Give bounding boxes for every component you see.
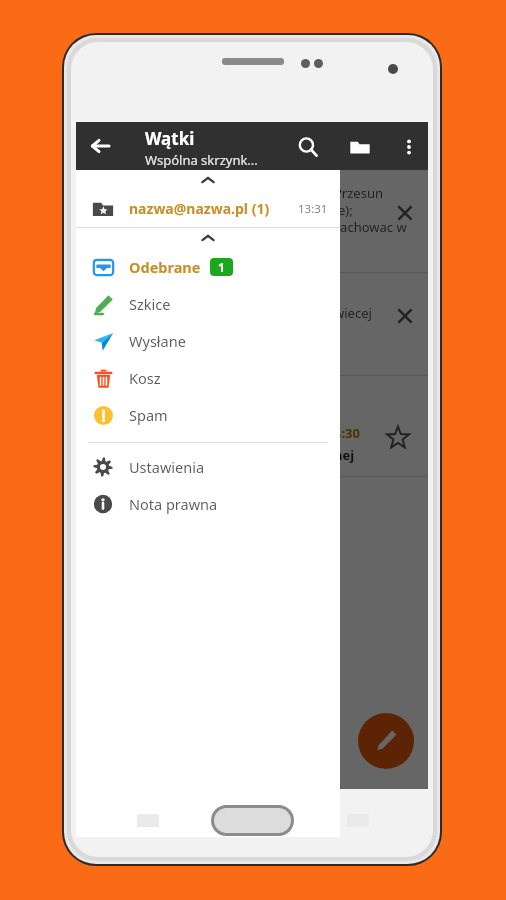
button[interactable]: Kosz bbox=[76, 359, 340, 396]
button[interactable]: Compose bbox=[358, 713, 414, 769]
button[interactable]: Szkice bbox=[76, 285, 340, 322]
staticText: Wątki bbox=[145, 127, 195, 150]
staticText: Nota prawna bbox=[129, 494, 218, 514]
button[interactable]: Folders bbox=[347, 134, 373, 160]
staticText: 4:30 bbox=[334, 424, 360, 442]
button[interactable]: Home bbox=[211, 805, 294, 836]
staticText: Wspólna skrzynk... bbox=[145, 151, 258, 169]
button[interactable]: Wysłane bbox=[76, 322, 340, 359]
button[interactable]: Dismiss bbox=[394, 202, 416, 224]
staticText: Przesun (e); zachowac w bbox=[334, 184, 407, 236]
button[interactable]: Nota prawna bbox=[76, 485, 340, 522]
button[interactable]: Dismiss bbox=[394, 305, 416, 327]
staticText: Wysłane bbox=[129, 331, 186, 351]
staticText: Szkice bbox=[129, 294, 171, 314]
staticText: wiecej bbox=[334, 287, 372, 322]
button[interactable]: nazwa@nazwa.pl (1) bbox=[76, 190, 340, 227]
staticText: nazwa@nazwa.pl (1) bbox=[129, 199, 270, 218]
button[interactable]: Back bbox=[86, 132, 114, 160]
staticText: nej bbox=[334, 446, 355, 464]
button[interactable]: Search bbox=[295, 134, 321, 160]
button[interactable]: Ustawienia bbox=[76, 448, 340, 485]
staticText: Odebrane bbox=[129, 257, 201, 277]
button[interactable]: Odebrane bbox=[76, 248, 340, 285]
button[interactable]: Spam bbox=[76, 396, 340, 433]
button[interactable]: Star bbox=[386, 426, 410, 450]
staticText: 1 bbox=[218, 259, 225, 275]
staticText: Kosz bbox=[129, 368, 161, 388]
staticText: 13:31 bbox=[298, 201, 328, 217]
button[interactable]: More options bbox=[396, 134, 422, 160]
staticText: Ustawienia bbox=[129, 457, 205, 477]
staticText: Spam bbox=[129, 405, 168, 425]
